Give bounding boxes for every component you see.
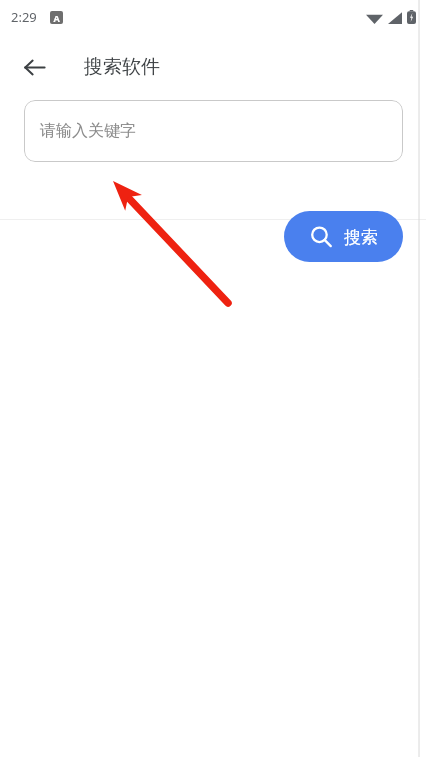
button[interactable]: 请输入关键字 — [24, 100, 403, 162]
staticText: 搜索 — [344, 227, 378, 248]
staticText: 搜索软件 — [84, 55, 160, 79]
staticText: 2:29 — [11, 8, 37, 26]
staticText: A — [53, 12, 60, 24]
button[interactable]: Back — [12, 45, 56, 89]
button[interactable]: 搜索 — [284, 211, 403, 262]
staticText: 请输入关键字 — [40, 121, 136, 141]
